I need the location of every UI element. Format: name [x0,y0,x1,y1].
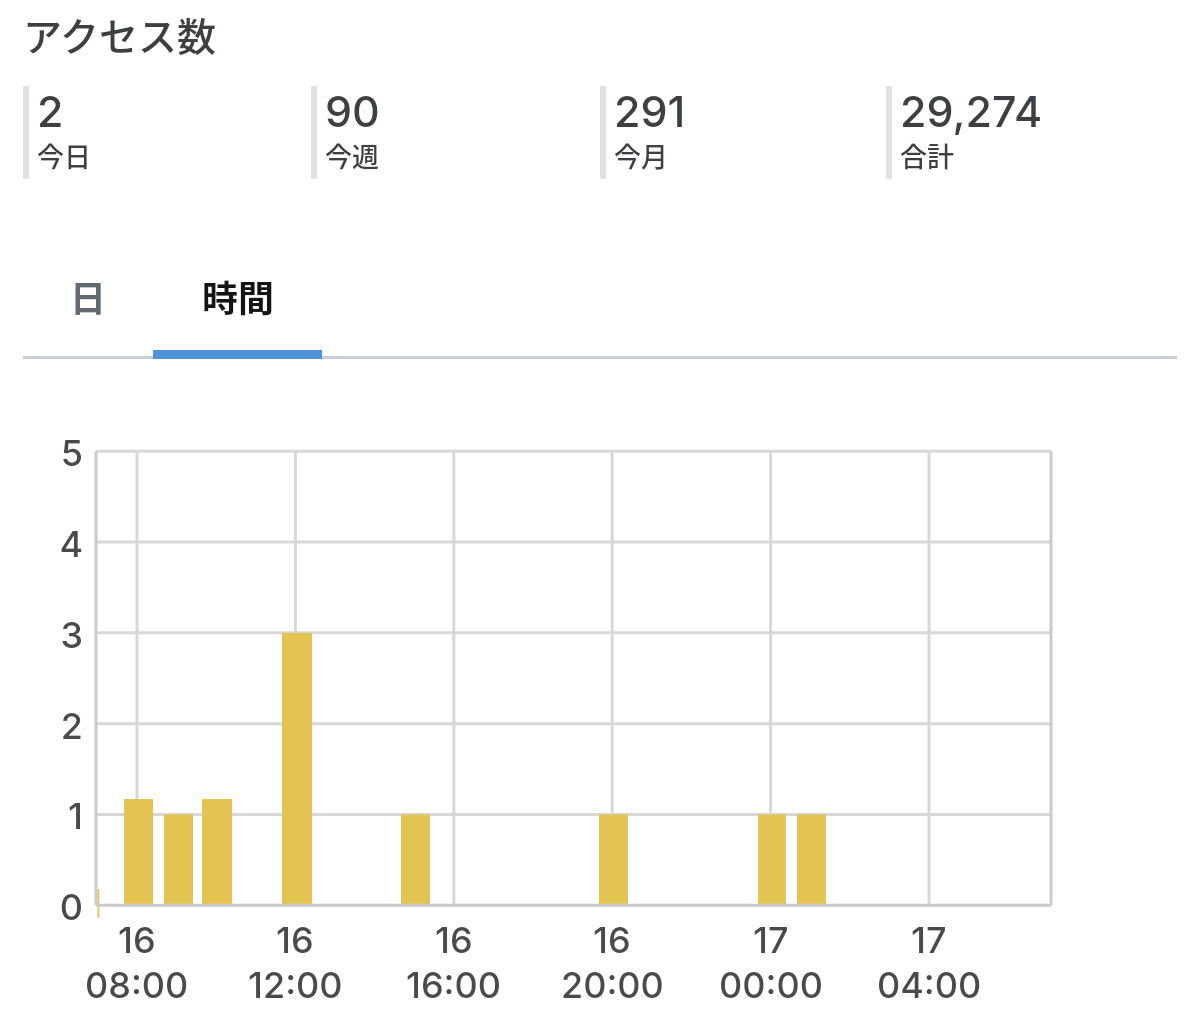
staticText: 1 [39,794,83,838]
staticText: 16 [593,918,631,962]
staticText: 12:00 [248,963,343,1007]
other: Hourly access chart [0,0,1200,1025]
staticText: 3 [39,613,83,657]
staticText: 90 [325,85,380,137]
button[interactable]: 291 [600,86,886,179]
staticText: 29,274 [900,85,1043,137]
staticText: 16 [276,918,314,962]
staticText: 2 [39,704,83,748]
staticText: 5 [39,431,83,475]
staticText: 合計 [900,136,954,175]
staticText: 時間 [202,270,275,322]
staticText: 日 [70,270,107,322]
button[interactable]: 日 [23,249,153,343]
staticText: 17 [911,918,947,962]
staticText: 4 [39,522,83,566]
button[interactable]: 時間 [153,249,323,343]
staticText: 16 [435,918,473,962]
staticText: 16:00 [406,963,502,1007]
staticText: 2 [37,85,64,137]
staticText: 04:00 [877,963,982,1007]
staticText: 今日 [37,136,91,175]
staticText: 0 [39,885,83,929]
staticText: 今月 [614,136,668,175]
staticText: 08:00 [85,963,189,1007]
staticText: 20:00 [561,963,664,1007]
button[interactable]: 29,274 [886,86,1177,179]
staticText: 291 [614,85,686,137]
button[interactable]: 2 [23,86,311,179]
staticText: 00:00 [719,963,823,1007]
staticText: 今週 [325,136,379,175]
staticText: 17 [753,918,789,962]
staticText: アクセス数 [23,6,217,62]
staticText: 16 [118,918,156,962]
button[interactable]: 90 [311,86,600,179]
